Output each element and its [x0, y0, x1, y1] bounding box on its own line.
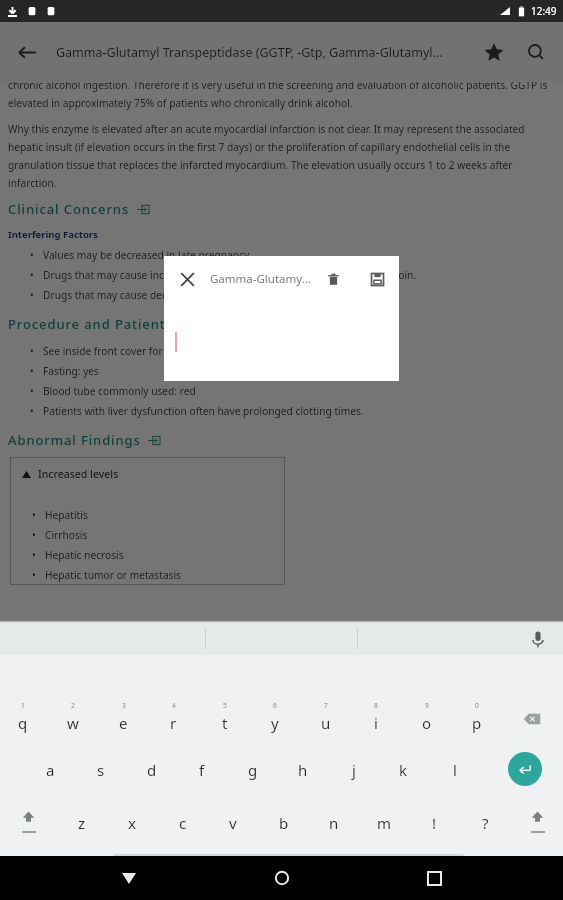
staticText: 3 [122, 701, 126, 710]
button[interactable]: Shift [516, 800, 558, 842]
button[interactable]: 0 [451, 693, 502, 741]
button[interactable]: ?123 [4, 851, 60, 885]
button[interactable]: Search [515, 31, 557, 73]
button[interactable]: k [378, 746, 429, 794]
staticText: b [279, 813, 289, 833]
button[interactable]: n [308, 799, 359, 847]
staticText: w [67, 713, 79, 733]
staticText: r [170, 713, 177, 733]
button[interactable]: b [258, 799, 309, 847]
button[interactable]: c [157, 799, 208, 847]
staticText: Gamma-Glutamy... [210, 271, 311, 287]
button[interactable]: v [207, 799, 258, 847]
button[interactable]: Save [355, 257, 399, 301]
button[interactable]: m [359, 799, 410, 847]
button[interactable]: Delete [311, 257, 355, 301]
button[interactable]: 5 [199, 693, 250, 741]
staticText: 12:49 [531, 4, 557, 18]
button[interactable]: Home [258, 856, 306, 900]
button[interactable]: ! [409, 799, 460, 847]
staticText: Values may be decreased in late pregnanc… [43, 248, 252, 262]
button[interactable]: s [75, 746, 126, 794]
button[interactable]: Period [470, 851, 506, 885]
staticText: u [321, 713, 331, 733]
button[interactable]: Enter [504, 748, 546, 790]
button[interactable]: Shift [7, 800, 49, 842]
button[interactable]: 7 [300, 693, 351, 741]
staticText: s [97, 760, 105, 780]
button[interactable]: Comma [66, 851, 102, 885]
staticText: • [32, 548, 36, 562]
button[interactable]: d [126, 746, 177, 794]
staticText: Increased levels [38, 467, 119, 481]
button[interactable]: Increased levels [22, 467, 273, 481]
staticText: 0 [475, 701, 479, 710]
staticText: z [78, 813, 86, 833]
button[interactable]: f [176, 746, 227, 794]
button[interactable]: Close [164, 256, 210, 302]
staticText: j [352, 760, 356, 780]
staticText: Patients with liver dysfunction often ha… [43, 404, 364, 418]
button[interactable]: 3 [98, 693, 149, 741]
staticText: • [32, 568, 36, 582]
button[interactable]: Back [6, 31, 48, 73]
button[interactable]: Voice input [525, 626, 551, 652]
button[interactable]: g [227, 746, 278, 794]
staticText: Fasting: yes [43, 364, 99, 378]
staticText: • [30, 268, 34, 282]
staticText: m [377, 813, 392, 833]
staticText: a [46, 760, 55, 780]
staticText: Blood tube commonly used: red [43, 384, 196, 398]
staticText: e [119, 713, 128, 733]
staticText: Why this enzyme is elevated after an acu… [8, 122, 555, 190]
staticText: f [199, 760, 205, 780]
staticText: h [298, 760, 308, 780]
staticText: p [472, 713, 482, 733]
staticText: y [271, 713, 279, 733]
staticText: ? [482, 813, 489, 833]
staticText: 2 [71, 701, 75, 710]
button[interactable]: x [106, 799, 157, 847]
button[interactable]: 1 [0, 693, 48, 741]
button[interactable]: 2 [47, 693, 98, 741]
button[interactable]: ? [460, 799, 511, 847]
staticText: d [147, 760, 157, 780]
staticText: • [30, 384, 34, 398]
staticText: • [32, 528, 36, 542]
button[interactable]: 6 [249, 693, 300, 741]
button[interactable]: l [429, 746, 480, 794]
button[interactable]: Emoji [519, 851, 555, 885]
staticText: Cirrhosis [45, 528, 88, 542]
staticText: o [422, 713, 432, 733]
staticText: v [229, 813, 237, 833]
staticText: Drugs that may cause decreased levels: o… [43, 288, 328, 302]
staticText: Hepatic tumor or metastasis [45, 568, 181, 582]
button[interactable]: Bookmark [473, 31, 515, 73]
button[interactable]: Recent apps [410, 856, 458, 900]
staticText: c [179, 813, 187, 833]
button[interactable]: a [25, 746, 76, 794]
button[interactable]: j [328, 746, 379, 794]
button[interactable]: 4 [148, 693, 199, 741]
staticText: q [18, 713, 28, 733]
staticText: Hepatic necrosis [45, 548, 124, 562]
staticText: See inside front cover for Routine Blood… [43, 344, 276, 358]
staticText: n [329, 813, 339, 833]
button[interactable]: z [56, 799, 107, 847]
button[interactable]: h [277, 746, 328, 794]
staticText: 4 [172, 701, 176, 710]
staticText: Abnormal Findings [8, 431, 141, 449]
staticText: Gamma-Glutamyl Transpeptidase (GGTP, -Gt… [56, 44, 473, 61]
staticText: • [32, 508, 36, 522]
button[interactable]: 9 [401, 693, 452, 741]
staticText: Interfering Factors [8, 228, 98, 241]
button[interactable]: Backspace [510, 697, 554, 741]
staticText: ! [432, 813, 437, 833]
staticText: 7 [324, 701, 328, 710]
button[interactable]: Space [113, 854, 464, 871]
button[interactable]: 8 [350, 693, 401, 741]
staticText: i [374, 713, 378, 733]
staticText: 6 [273, 701, 277, 710]
button[interactable]: Back [105, 856, 153, 900]
